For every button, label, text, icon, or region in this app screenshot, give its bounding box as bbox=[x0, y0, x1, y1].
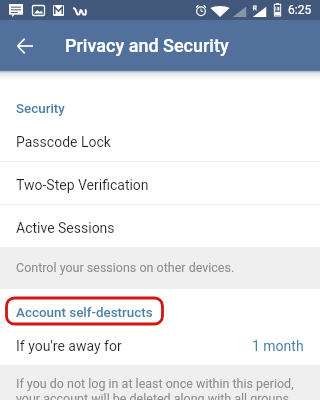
staticText: Account self-destructs bbox=[16, 305, 153, 321]
staticText: Security bbox=[16, 101, 65, 117]
button[interactable]: Two-Step Verification bbox=[0, 163, 320, 205]
staticText: If you do not log in at least once withi… bbox=[16, 376, 294, 400]
staticText: Privacy and Security bbox=[65, 35, 229, 56]
staticText: 1 month bbox=[252, 338, 304, 354]
staticText: Control your sessions on other devices. bbox=[16, 260, 235, 275]
button[interactable]: Back bbox=[1, 20, 49, 70]
button[interactable]: Active Sessions bbox=[0, 206, 320, 248]
staticText: Two-Step Verification bbox=[16, 177, 149, 193]
staticText: Active Sessions bbox=[16, 220, 115, 236]
staticText: 6:25 bbox=[288, 3, 312, 17]
button[interactable]: Passcode Lock bbox=[0, 119, 320, 162]
button[interactable]: If you're away for bbox=[0, 327, 320, 364]
staticText: If you're away for bbox=[16, 338, 122, 354]
staticText: Passcode Lock bbox=[16, 134, 111, 150]
